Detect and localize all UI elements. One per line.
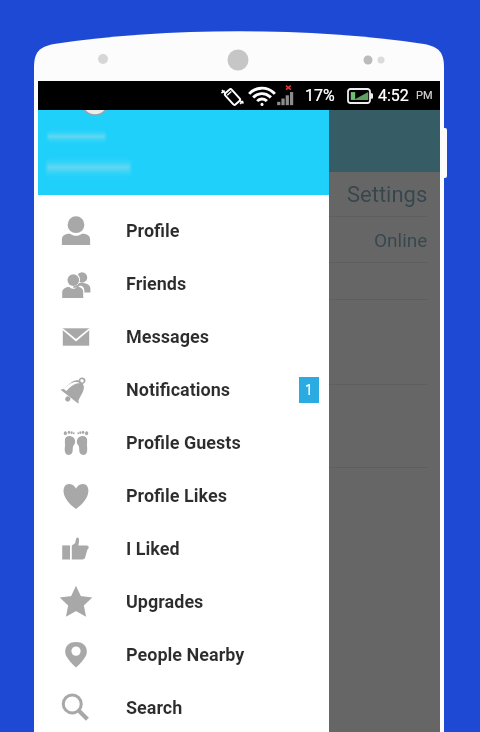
button[interactable]: Profile (38, 204, 329, 257)
staticText: PM (416, 89, 433, 102)
button[interactable] (38, 385, 440, 468)
button[interactable] (38, 300, 440, 385)
staticText: 1 (305, 382, 313, 398)
button[interactable]: Online (38, 217, 440, 263)
staticText: Profile (126, 220, 180, 241)
button[interactable]: Search (38, 681, 329, 732)
button[interactable]: People Nearby (38, 628, 329, 681)
staticText: 17% (305, 86, 335, 105)
staticText: Search (126, 697, 183, 718)
staticText: Notifications (126, 379, 231, 400)
button[interactable]: Profile Guests (38, 416, 329, 469)
staticText: Upgrades (126, 591, 204, 612)
button[interactable] (38, 263, 440, 300)
button[interactable]: Profile Likes (38, 469, 329, 522)
staticText: Online (374, 229, 428, 251)
staticText: Profile Likes (126, 485, 227, 506)
button[interactable]: I Liked (38, 522, 329, 575)
button[interactable]: Notifications (38, 363, 329, 416)
staticText: 4:52 (378, 86, 409, 105)
staticText: Settings (347, 182, 428, 208)
button[interactable]: Settings (38, 172, 440, 217)
staticText: People Nearby (126, 644, 245, 665)
staticText: Messages (126, 326, 209, 347)
button[interactable]: Friends (38, 257, 329, 310)
staticText: Profile Guests (126, 432, 241, 453)
button[interactable]: Upgrades (38, 575, 329, 628)
staticText: Friends (126, 273, 187, 294)
staticText: I Liked (126, 538, 180, 559)
button[interactable]: Messages (38, 310, 329, 363)
